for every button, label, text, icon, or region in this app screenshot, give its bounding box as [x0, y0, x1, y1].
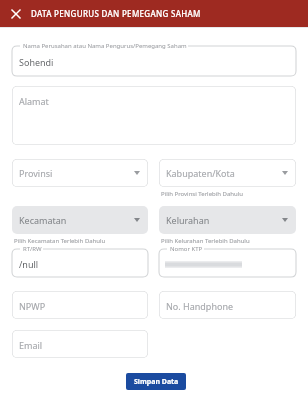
button[interactable]: Nama Perusahan atau Nama Pengurus/Pemega… — [12, 46, 296, 76]
staticText: Simpan Data — [134, 377, 179, 387]
button[interactable]: No. Handphone — [159, 291, 296, 319]
staticText: Pilih Kecamatan Terlebih Dahulu — [14, 237, 106, 245]
button[interactable]: Alamat — [12, 86, 296, 145]
button[interactable]: Simpan Data — [126, 373, 186, 390]
staticText: Nama Perusahan atau Nama Pengurus/Pemega… — [23, 42, 187, 50]
button[interactable]: NPWP — [12, 291, 148, 319]
staticText: Alamat — [19, 95, 49, 107]
staticText: Pilih Provinsi Terlebih Dahulu — [161, 190, 243, 198]
staticText: RT/RW — [23, 245, 42, 253]
staticText: NPWP — [19, 300, 46, 312]
button[interactable]: Email — [12, 330, 148, 358]
button[interactable]: Close — [7, 5, 25, 23]
staticText: Email — [19, 339, 43, 351]
staticText: DATA PENGURUS DAN PEMEGANG SAHAM — [31, 8, 201, 19]
staticText: Nomor KTP — [170, 245, 203, 253]
button[interactable]: Kelurahan — [159, 206, 296, 234]
button[interactable]: Nomor KTP — [159, 249, 296, 277]
staticText: Sohendi — [19, 56, 54, 68]
staticText: /null — [19, 258, 39, 270]
staticText: Kabupaten/Kota — [166, 167, 235, 179]
button[interactable]: Provinsi — [12, 159, 148, 187]
button[interactable]: Kabupaten/Kota — [159, 159, 296, 187]
staticText: No. Handphone — [166, 300, 234, 312]
staticText: Provinsi — [19, 167, 53, 179]
staticText: Kelurahan — [166, 214, 210, 226]
button[interactable]: Kecamatan — [12, 206, 148, 234]
staticText: Kecamatan — [19, 214, 67, 226]
staticText: Pilih Kelurahan Terlebih Dahulu — [161, 237, 250, 245]
button[interactable]: RT/RW — [12, 249, 148, 277]
